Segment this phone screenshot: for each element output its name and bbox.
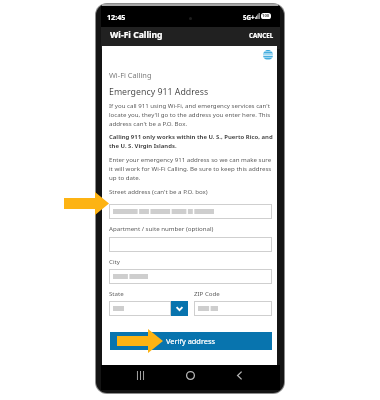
staticText: State bbox=[109, 289, 124, 297]
button[interactable] bbox=[194, 301, 272, 316]
staticText: Apartment / suite number (optional) bbox=[109, 224, 214, 232]
staticText: Calling 911 only works within the U. S.,… bbox=[109, 133, 278, 150]
button[interactable]: Recent apps bbox=[133, 367, 148, 384]
button[interactable]: Back bbox=[232, 367, 247, 384]
button[interactable]: Select state bbox=[171, 301, 188, 316]
staticText: Wi-Fi Calling bbox=[109, 70, 152, 80]
button[interactable]: Wi-Fi Calling bbox=[101, 27, 280, 49]
button[interactable] bbox=[109, 269, 272, 284]
button[interactable] bbox=[109, 237, 272, 252]
button[interactable] bbox=[109, 301, 171, 316]
staticText: 100 bbox=[262, 13, 270, 19]
button[interactable]: Verify address bbox=[110, 332, 272, 350]
button[interactable] bbox=[109, 204, 272, 219]
staticText: Enter your emergency 911 address so we c… bbox=[109, 155, 272, 182]
staticText: City bbox=[109, 257, 120, 265]
button[interactable]: CANCEL bbox=[243, 26, 280, 44]
staticText: 5G+ bbox=[243, 13, 255, 21]
button[interactable]: Home bbox=[183, 367, 198, 384]
staticText: Wi-Fi Calling bbox=[110, 29, 163, 41]
staticText: If you call 911 using Wi-Fi, and emergen… bbox=[109, 101, 272, 128]
staticText: Verify address bbox=[166, 336, 216, 346]
staticText: Street address (can't be a P.O. box) bbox=[109, 187, 208, 195]
staticText: CANCEL bbox=[249, 31, 274, 39]
staticText: ZIP Code bbox=[194, 289, 220, 297]
staticText: Emergency 911 Address bbox=[109, 86, 209, 98]
staticText: 12:45 bbox=[107, 12, 126, 22]
